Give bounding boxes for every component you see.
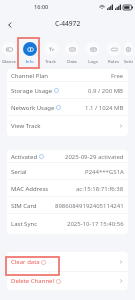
- staticText: Logs: [88, 58, 98, 64]
- staticText: MAC Address: [11, 185, 49, 193]
- button[interactable]: Logs: [82, 32, 103, 64]
- button[interactable]: View Track: [7, 116, 128, 136]
- staticText: 2025-10-17 15:40:56: [67, 220, 124, 228]
- staticText: Track: [45, 58, 56, 64]
- staticText: Free: [111, 72, 124, 80]
- staticText: View Track: [11, 122, 41, 130]
- staticText: 0.9 / 200 MB: [88, 87, 124, 95]
- staticText: Channel Plan: [11, 72, 49, 80]
- button[interactable]: MAC Address: [7, 180, 128, 197]
- staticText: 89860849192405114241: [55, 202, 124, 210]
- staticText: Serial: [11, 168, 27, 176]
- staticText: Info: [25, 58, 34, 64]
- button[interactable]: Network Usage: [7, 99, 128, 116]
- button[interactable]: Serial: [7, 163, 128, 180]
- staticText: P244***GS1A: [85, 168, 124, 176]
- button[interactable]: Settings: [124, 32, 133, 65]
- staticText: Rules: [108, 58, 119, 64]
- button[interactable]: Data: [61, 32, 82, 64]
- button[interactable]: Info: [19, 32, 40, 64]
- button[interactable]: Glance: [0, 32, 19, 64]
- button[interactable]: Rules: [103, 32, 124, 64]
- staticText: C-44972: [55, 19, 81, 28]
- staticText: ac:15:18:71:f6:38: [76, 185, 124, 193]
- button[interactable]: Track: [40, 32, 61, 64]
- staticText: Storage Usage: [11, 87, 53, 95]
- staticText: Clear data: [11, 258, 40, 266]
- staticText: Settings: [124, 58, 133, 65]
- button[interactable]: Delete Channel: [7, 272, 128, 290]
- staticText: 16:00: [34, 3, 49, 11]
- button[interactable]: Clear data: [7, 252, 128, 272]
- button[interactable]: Back: [0, 16, 19, 34]
- staticText: SIM Card: [11, 202, 37, 210]
- staticText: Glance: [2, 58, 16, 64]
- staticText: Data: [67, 58, 77, 64]
- staticText: Delete Channel: [11, 277, 55, 285]
- staticText: 2025-09-29 activated: [65, 153, 124, 161]
- button[interactable]: SIM Card: [7, 197, 128, 214]
- staticText: Network Usage: [11, 104, 55, 112]
- staticText: 1.1 / 1024 MB: [85, 104, 124, 112]
- staticText: Last Sync: [11, 220, 38, 228]
- button[interactable]: Channel Plan: [7, 69, 128, 82]
- staticText: Activated: [11, 153, 38, 161]
- button[interactable]: Last Sync: [7, 214, 128, 234]
- button[interactable]: Activated: [7, 150, 128, 163]
- button[interactable]: Storage Usage: [7, 82, 128, 99]
